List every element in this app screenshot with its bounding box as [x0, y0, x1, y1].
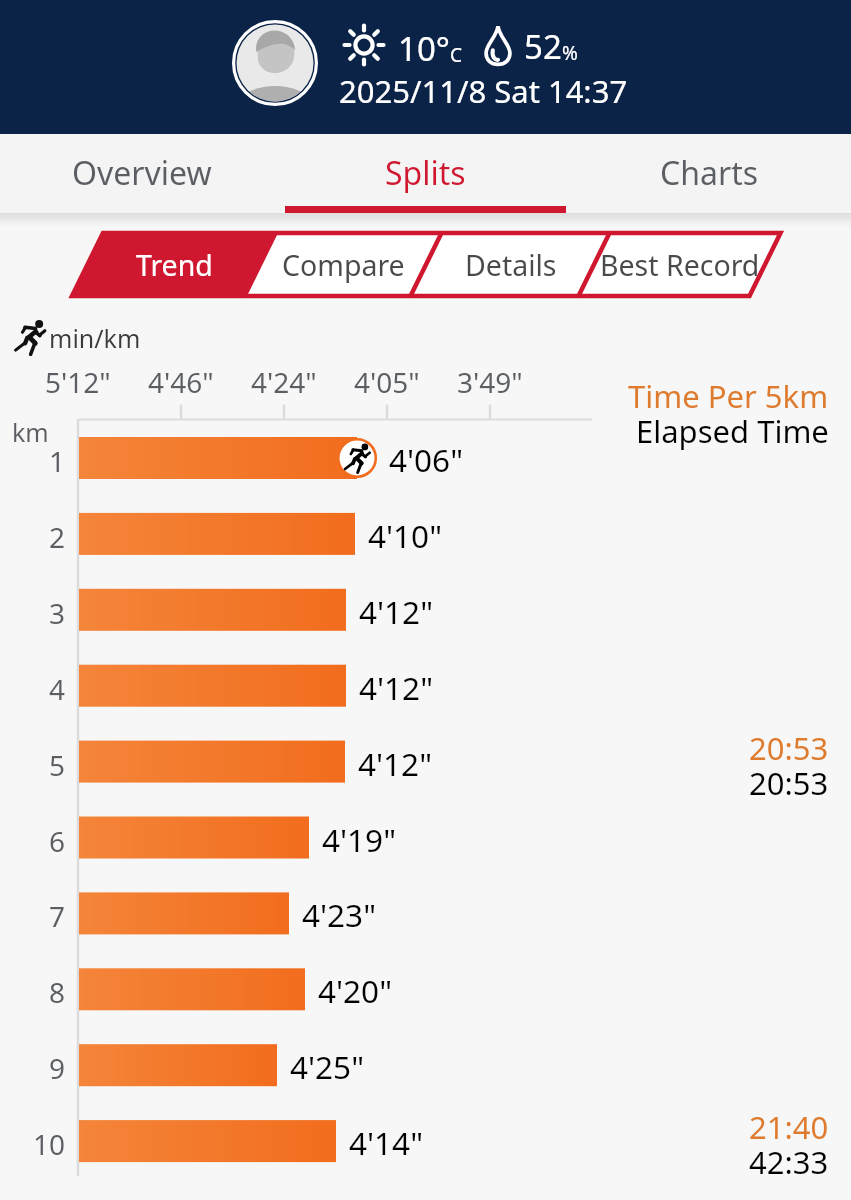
staticText: %	[562, 40, 578, 66]
button[interactable]: Compare	[245, 233, 442, 296]
staticText: Trend	[136, 246, 213, 285]
staticText: 4'10"	[368, 514, 442, 557]
staticText: Overview	[72, 151, 212, 195]
staticText: 7	[49, 897, 66, 935]
staticText: 4'20"	[318, 969, 392, 1012]
staticText: 4'46"	[148, 363, 214, 401]
staticText: 4'24"	[251, 363, 317, 401]
staticText: 10	[33, 1125, 66, 1163]
staticText: Charts	[660, 151, 759, 195]
staticText: 21:40	[749, 1106, 829, 1148]
button[interactable]: Trend	[72, 233, 276, 296]
staticText: 4'12"	[359, 666, 433, 709]
staticText: 5	[49, 746, 66, 784]
staticText: 2	[49, 518, 66, 556]
other: Weather: sunny	[342, 23, 386, 67]
staticText: Best Record	[600, 246, 760, 285]
staticText: 8	[49, 973, 66, 1011]
button[interactable]: Details	[411, 233, 610, 296]
button[interactable]: Charts	[567, 134, 851, 213]
staticText: C	[450, 42, 463, 68]
button[interactable]: Overview	[0, 134, 283, 213]
staticText: 52	[524, 24, 562, 69]
staticText: 9	[49, 1049, 66, 1087]
staticText: 2025/11/8 Sat 14:37	[339, 70, 628, 112]
staticText: 3	[49, 594, 66, 632]
staticText: 4'06"	[389, 438, 463, 481]
staticText: Details	[465, 246, 557, 285]
staticText: 10°	[398, 26, 450, 71]
staticText: 42:33	[749, 1141, 829, 1183]
staticText: 4	[49, 670, 66, 708]
staticText: Time Per 5km	[628, 375, 829, 417]
staticText: Compare	[282, 246, 405, 285]
staticText: 4'19"	[322, 818, 396, 861]
button[interactable]: Profile	[232, 20, 318, 106]
staticText: 4'05"	[354, 363, 420, 401]
staticText: 4'12"	[359, 590, 433, 633]
staticText: km	[12, 415, 49, 449]
staticText: 4'23"	[302, 893, 376, 936]
staticText: min/km	[49, 321, 141, 355]
staticText: Elapsed Time	[636, 410, 829, 452]
staticText: 20:53	[749, 727, 829, 769]
staticText: 4'25"	[290, 1045, 364, 1088]
button[interactable]: Splits	[283, 134, 567, 213]
staticText: 1	[49, 442, 66, 480]
staticText: 4'12"	[358, 742, 432, 785]
staticText: Splits	[385, 151, 466, 195]
staticText: 5'12"	[45, 363, 111, 401]
staticText: 3'49"	[457, 363, 523, 401]
staticText: 6	[49, 822, 66, 860]
staticText: 4'14"	[349, 1121, 423, 1164]
staticText: 20:53	[749, 762, 829, 804]
button[interactable]: Best Record	[579, 233, 781, 296]
